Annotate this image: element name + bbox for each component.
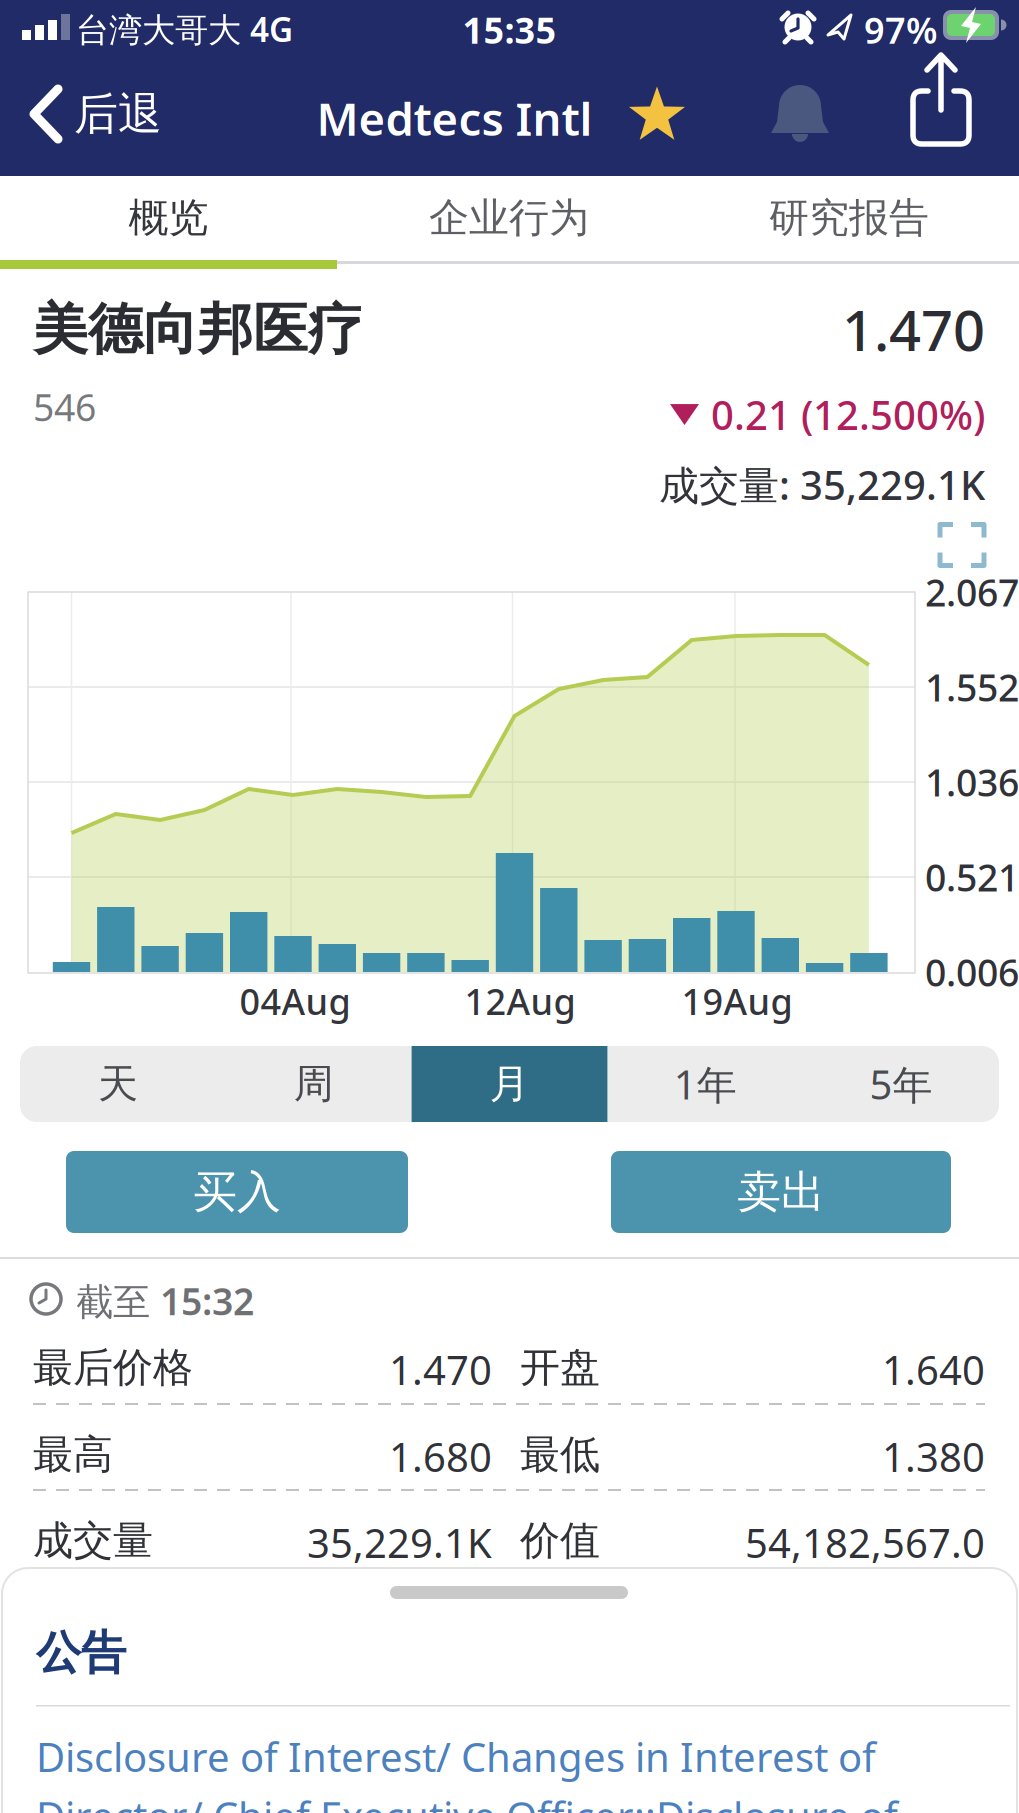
staticText: 0.521 — [925, 852, 1019, 902]
staticText: 成交量: 35,229.1K — [659, 458, 985, 511]
button[interactable] — [768, 82, 832, 146]
button[interactable]: 后退 — [30, 87, 162, 141]
staticText: Director/ Chief Executive Officer::Discl… — [36, 1789, 898, 1813]
staticText: 1.036 — [925, 757, 1019, 807]
button[interactable]: 天 — [20, 1046, 216, 1122]
staticText: 最高 — [33, 1430, 113, 1479]
button[interactable]: Disclosure of Interest/ Changes in Inter… — [36, 1730, 898, 1813]
staticText: 1.380 — [882, 1430, 985, 1483]
staticText: 天 — [98, 1059, 138, 1108]
staticText: 周 — [294, 1059, 334, 1108]
staticText: 开盘 — [520, 1343, 600, 1392]
staticText: 0.21 (12.500%) — [711, 388, 985, 441]
staticText: 后退 — [74, 87, 162, 141]
staticText: 1.680 — [389, 1430, 492, 1483]
staticText: 54,182,567.0 — [745, 1516, 985, 1569]
staticText: 15:35 — [462, 6, 556, 54]
staticText: 成交量 — [33, 1516, 153, 1565]
button[interactable]: 研究报告 — [679, 176, 1019, 260]
staticText: 2.067 — [925, 567, 1019, 617]
button[interactable]: 1年 — [607, 1046, 803, 1122]
staticText: 台湾大哥大 4G — [76, 7, 293, 51]
staticText: 19Aug — [681, 977, 792, 1025]
staticText: 1年 — [674, 1057, 737, 1110]
button[interactable]: 周 — [216, 1046, 412, 1122]
button[interactable] — [624, 82, 690, 148]
button[interactable]: 卖出 — [611, 1151, 951, 1233]
staticText: 概览 — [128, 193, 208, 242]
staticText: 5年 — [870, 1057, 933, 1110]
button[interactable]: 月 — [412, 1046, 607, 1122]
button[interactable]: 买入 — [66, 1151, 408, 1233]
staticText: 0.006 — [925, 947, 1019, 997]
staticText: 12Aug — [464, 977, 575, 1025]
staticText: 97% — [864, 6, 938, 54]
staticText: 价值 — [520, 1516, 600, 1565]
staticText: 美德向邦医疗 — [33, 296, 363, 363]
staticText: 截至 15:32 — [76, 1276, 254, 1326]
button[interactable]: 企业行为 — [339, 176, 679, 260]
staticText: 最低 — [520, 1430, 600, 1479]
staticText: 最后价格 — [33, 1343, 193, 1392]
staticText: 1.552 — [925, 662, 1019, 712]
staticText: 买入 — [193, 1165, 281, 1219]
staticText: 1.470 — [389, 1343, 492, 1396]
staticText: 35,229.1K — [307, 1516, 492, 1569]
staticText: 卖出 — [737, 1165, 825, 1219]
staticText: 04Aug — [239, 977, 350, 1025]
button[interactable]: 概览 — [0, 176, 337, 260]
staticText: 1.640 — [882, 1343, 985, 1396]
staticText: 月 — [489, 1059, 529, 1108]
button[interactable] — [938, 522, 986, 567]
staticText: 研究报告 — [769, 193, 929, 242]
staticText: 546 — [33, 382, 96, 432]
button[interactable]: 5年 — [803, 1046, 999, 1122]
button[interactable] — [909, 53, 973, 149]
staticText: Disclosure of Interest/ Changes in Inter… — [36, 1730, 876, 1783]
staticText: 公告 — [36, 1625, 126, 1681]
staticText: Medtecs Intl — [316, 88, 592, 148]
staticText: 企业行为 — [429, 193, 589, 242]
staticText: 1.470 — [842, 292, 985, 366]
